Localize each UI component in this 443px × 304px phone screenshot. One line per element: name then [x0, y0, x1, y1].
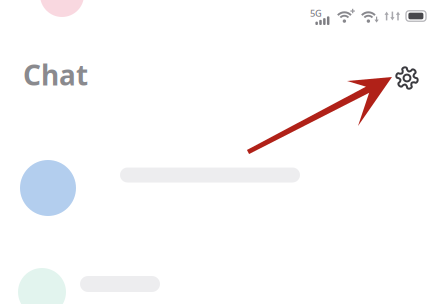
button[interactable]: Settings [385, 56, 429, 100]
button[interactable] [18, 268, 423, 304]
staticText: Chat [23, 56, 88, 93]
button[interactable] [20, 160, 425, 216]
staticText: 5G [310, 7, 322, 19]
